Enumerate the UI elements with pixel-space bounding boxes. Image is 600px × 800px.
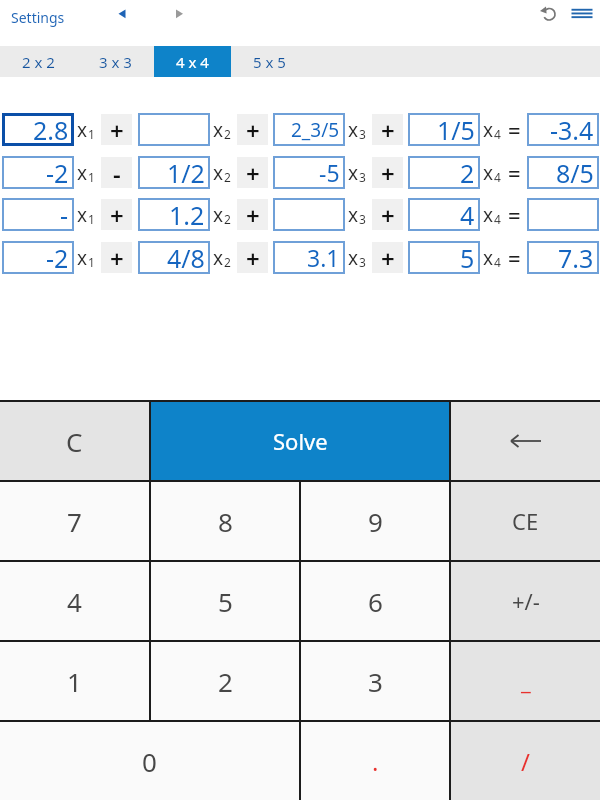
staticText: + xyxy=(381,114,395,145)
staticText: + xyxy=(246,242,260,273)
button[interactable] xyxy=(568,2,596,30)
staticText: 3 xyxy=(359,169,366,185)
button[interactable]: CE xyxy=(451,482,600,560)
button[interactable]: 5 xyxy=(408,241,480,274)
staticText: 2 xyxy=(218,664,233,699)
staticText: +/- xyxy=(512,586,540,616)
button[interactable]: + xyxy=(237,114,268,145)
button[interactable] xyxy=(273,198,345,231)
staticText: x xyxy=(483,160,494,186)
button[interactable]: + xyxy=(372,114,403,145)
button[interactable]: + xyxy=(101,199,132,230)
button[interactable]: 5 xyxy=(151,562,299,640)
staticText: 3.1 xyxy=(307,242,340,273)
button[interactable]: -2 xyxy=(2,241,74,274)
button[interactable]: -5 xyxy=(273,156,345,189)
button[interactable]: 6 xyxy=(301,562,449,640)
button[interactable]: 5 x 5 xyxy=(231,46,308,77)
button[interactable]: 4 x 4 xyxy=(154,46,231,77)
staticText: 2_3/5 xyxy=(291,117,340,143)
button[interactable]: + xyxy=(372,199,403,230)
button[interactable]: + xyxy=(101,114,132,145)
staticText: -2 xyxy=(46,241,69,274)
button[interactable]: 2.8 xyxy=(2,113,74,146)
button[interactable] xyxy=(112,4,134,26)
staticText: + xyxy=(110,199,124,230)
staticText: 1/5 xyxy=(437,113,475,146)
button[interactable]: + xyxy=(372,242,403,273)
staticText: 1 xyxy=(88,211,95,227)
button[interactable]: 1/5 xyxy=(408,113,480,146)
button[interactable]: + xyxy=(372,157,403,188)
button[interactable]: 3 x 3 xyxy=(77,46,154,77)
staticText: x xyxy=(483,117,494,143)
button[interactable] xyxy=(536,2,562,28)
button[interactable]: 8/5 xyxy=(527,156,599,189)
button[interactable]: 1 xyxy=(0,642,149,720)
staticText: 3 xyxy=(368,664,383,699)
button[interactable]: 3.1 xyxy=(273,241,345,274)
button[interactable]: Settings xyxy=(11,8,65,27)
button[interactable]: 3 xyxy=(301,642,449,720)
staticText: x xyxy=(77,117,88,143)
button[interactable]: 2 xyxy=(408,156,480,189)
staticText: x xyxy=(77,160,88,186)
button[interactable]: 1.2 xyxy=(138,198,210,231)
button[interactable] xyxy=(527,198,599,231)
staticText: 6 xyxy=(368,584,383,619)
button[interactable]: Solve xyxy=(151,402,449,480)
button[interactable]: 7 xyxy=(0,482,149,560)
button[interactable]: / xyxy=(451,722,600,800)
button[interactable]: - xyxy=(2,198,74,231)
staticText: = xyxy=(508,115,521,145)
staticText: 9 xyxy=(368,504,383,539)
button[interactable]: 2_3/5 xyxy=(273,113,345,146)
staticText: CE xyxy=(512,506,539,536)
staticText: x xyxy=(213,245,224,271)
staticText: + xyxy=(246,114,260,145)
staticText: = xyxy=(508,200,521,230)
staticText: x xyxy=(348,245,359,271)
button[interactable]: 8 xyxy=(151,482,299,560)
button[interactable]: - xyxy=(101,157,132,188)
staticText: 3 x 3 xyxy=(99,52,132,72)
button[interactable]: +/- xyxy=(451,562,600,640)
button[interactable]: 2 x 2 xyxy=(0,46,77,77)
button[interactable]: + xyxy=(237,199,268,230)
staticText: 4 xyxy=(494,254,501,270)
button[interactable]: -3.4 xyxy=(527,113,599,146)
button[interactable]: 0 xyxy=(0,722,299,800)
button[interactable]: + xyxy=(101,242,132,273)
button[interactable]: . xyxy=(301,722,449,800)
staticText: 1 xyxy=(88,254,95,270)
staticText: x xyxy=(348,117,359,143)
staticText: 3 xyxy=(359,126,366,142)
button[interactable] xyxy=(138,113,210,146)
staticText: 0 xyxy=(142,744,157,779)
staticText: + xyxy=(110,114,124,145)
button[interactable]: 4 xyxy=(408,198,480,231)
button[interactable]: _ xyxy=(451,642,600,720)
button[interactable]: 4/8 xyxy=(138,241,210,274)
staticText: 3 xyxy=(359,254,366,270)
button[interactable]: 1/2 xyxy=(138,156,210,189)
staticText: 5 xyxy=(460,241,475,274)
staticText: 2 xyxy=(224,169,231,185)
button[interactable]: 4 xyxy=(0,562,149,640)
staticText: 2 xyxy=(224,126,231,142)
button[interactable]: 7.3 xyxy=(527,241,599,274)
button[interactable]: 9 xyxy=(301,482,449,560)
button[interactable] xyxy=(170,4,192,26)
button[interactable]: + xyxy=(237,242,268,273)
button[interactable]: -2 xyxy=(2,156,74,189)
button[interactable] xyxy=(451,402,600,480)
staticText: -5 xyxy=(319,157,340,188)
button[interactable]: C xyxy=(0,402,149,480)
staticText: 1.2 xyxy=(169,198,205,231)
staticText: x xyxy=(77,202,88,228)
staticText: -3.4 xyxy=(550,113,594,146)
button[interactable]: + xyxy=(237,157,268,188)
staticText: 4 xyxy=(494,211,501,227)
staticText: 2 xyxy=(224,211,231,227)
button[interactable]: 2 xyxy=(151,642,299,720)
